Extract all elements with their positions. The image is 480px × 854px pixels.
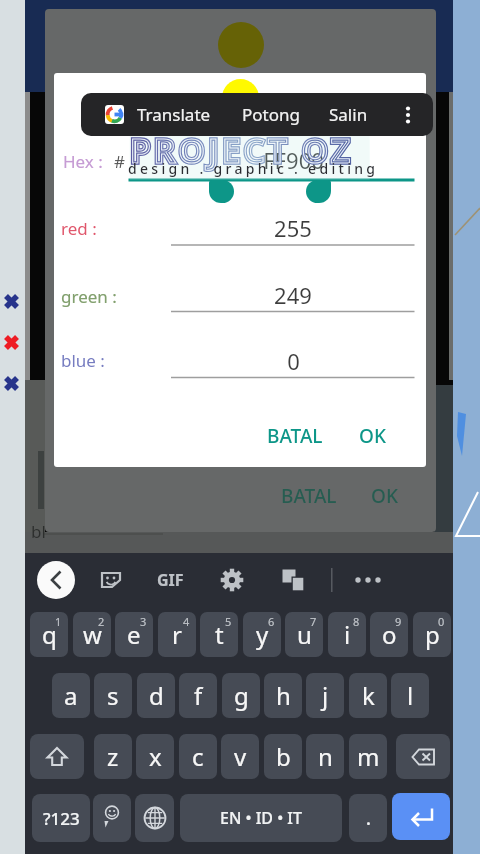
button[interactable]: o	[370, 612, 408, 657]
staticText: 0	[287, 346, 300, 374]
staticText: OK	[359, 423, 386, 449]
staticText: Salin	[329, 103, 368, 126]
staticText: b	[276, 740, 291, 773]
button[interactable]: Settings	[213, 561, 251, 599]
staticText: green :	[61, 285, 117, 308]
button[interactable]: Emoji	[93, 794, 131, 842]
staticText: l	[407, 679, 414, 712]
button[interactable]: Potong	[232, 93, 309, 136]
button[interactable]: Salin	[319, 93, 378, 136]
button[interactable]: EN • ID • IT	[180, 794, 342, 842]
staticText: o	[382, 618, 397, 651]
staticText: 6	[268, 614, 275, 629]
button[interactable]: z	[94, 734, 132, 779]
staticText: 7	[310, 614, 317, 629]
staticText: BATAL	[281, 483, 337, 509]
button[interactable]: Backspace	[396, 734, 450, 779]
staticText: BATAL	[267, 423, 323, 449]
staticText: f	[194, 679, 203, 712]
button[interactable]: Enter	[392, 793, 450, 840]
button[interactable]: r	[158, 612, 196, 657]
button[interactable]: More	[348, 561, 388, 599]
button[interactable]: b	[264, 734, 302, 779]
staticText: e	[127, 618, 141, 651]
staticText: 255	[274, 213, 312, 241]
button[interactable]: w	[73, 612, 111, 657]
button[interactable]: s	[94, 673, 132, 718]
button[interactable]: Google	[105, 105, 124, 124]
staticText: v	[234, 740, 247, 773]
button[interactable]: g	[222, 673, 260, 718]
button[interactable]: .	[349, 794, 387, 842]
staticText: s	[107, 679, 119, 712]
button[interactable]: j	[306, 673, 344, 718]
staticText: 2	[98, 614, 105, 629]
staticText: 249	[274, 280, 312, 308]
button[interactable]: More options	[392, 93, 424, 136]
button[interactable]: v	[221, 734, 259, 779]
button[interactable]: Translate	[131, 93, 217, 136]
staticText: red :	[61, 217, 97, 240]
staticText: p	[425, 618, 440, 651]
staticText: 8	[353, 614, 360, 629]
button[interactable]: h	[264, 673, 302, 718]
button[interactable]: Back	[37, 561, 75, 599]
button[interactable]: c	[179, 734, 217, 779]
staticText: 4	[183, 614, 190, 629]
button[interactable]: y	[243, 612, 281, 657]
button[interactable]: d	[137, 673, 175, 718]
button[interactable]: m	[349, 734, 387, 779]
button[interactable]: u	[285, 612, 323, 657]
staticText: bl	[31, 520, 46, 543]
staticText: n	[318, 740, 333, 773]
button[interactable]: ?123	[32, 794, 90, 842]
staticText: OK	[371, 483, 398, 509]
staticText: 1	[55, 614, 62, 629]
staticText: .	[366, 806, 371, 831]
staticText: i	[344, 618, 351, 651]
button[interactable]: OK	[355, 418, 389, 454]
staticText: #	[114, 150, 125, 173]
button[interactable]: k	[349, 673, 387, 718]
button[interactable]: Shift	[30, 734, 84, 779]
button[interactable]: f	[179, 673, 217, 718]
staticText: GIF	[157, 569, 184, 591]
staticText: u	[297, 618, 312, 651]
staticText: 3	[140, 614, 147, 629]
staticText: Potong	[242, 103, 300, 126]
staticText: 9	[395, 614, 402, 629]
staticText: r	[172, 618, 182, 651]
button[interactable]: e	[115, 612, 153, 657]
button[interactable]: a	[52, 673, 90, 718]
button[interactable]: Change language	[135, 794, 174, 842]
staticText: g	[234, 679, 249, 712]
staticText: q	[42, 618, 57, 651]
staticText: j	[322, 679, 329, 712]
staticText: Hex :	[63, 150, 103, 173]
staticText: ?123	[43, 807, 80, 830]
button[interactable]: Translate	[274, 561, 312, 599]
staticText: 0	[438, 614, 445, 629]
staticText: a	[64, 679, 78, 712]
button[interactable]: x	[136, 734, 174, 779]
button[interactable]: GIF	[145, 561, 195, 599]
staticText: c	[192, 740, 204, 773]
staticText: z	[107, 740, 119, 773]
staticText: d	[149, 679, 164, 712]
staticText: m	[357, 740, 380, 773]
button[interactable]: p	[413, 612, 451, 657]
staticText: EN • ID • IT	[220, 807, 303, 829]
staticText: FF900	[263, 145, 324, 173]
staticText: h	[276, 679, 291, 712]
staticText: t	[215, 618, 224, 651]
staticText: w	[83, 618, 102, 651]
button[interactable]: n	[306, 734, 344, 779]
button[interactable]: i	[328, 612, 366, 657]
button[interactable]: BATAL	[262, 418, 328, 454]
button[interactable]: l	[391, 673, 429, 718]
staticText: k	[362, 679, 375, 712]
button[interactable]: t	[200, 612, 238, 657]
button[interactable]: q	[30, 612, 68, 657]
staticText: Translate	[137, 103, 211, 126]
button[interactable]: Stickers	[92, 561, 130, 599]
